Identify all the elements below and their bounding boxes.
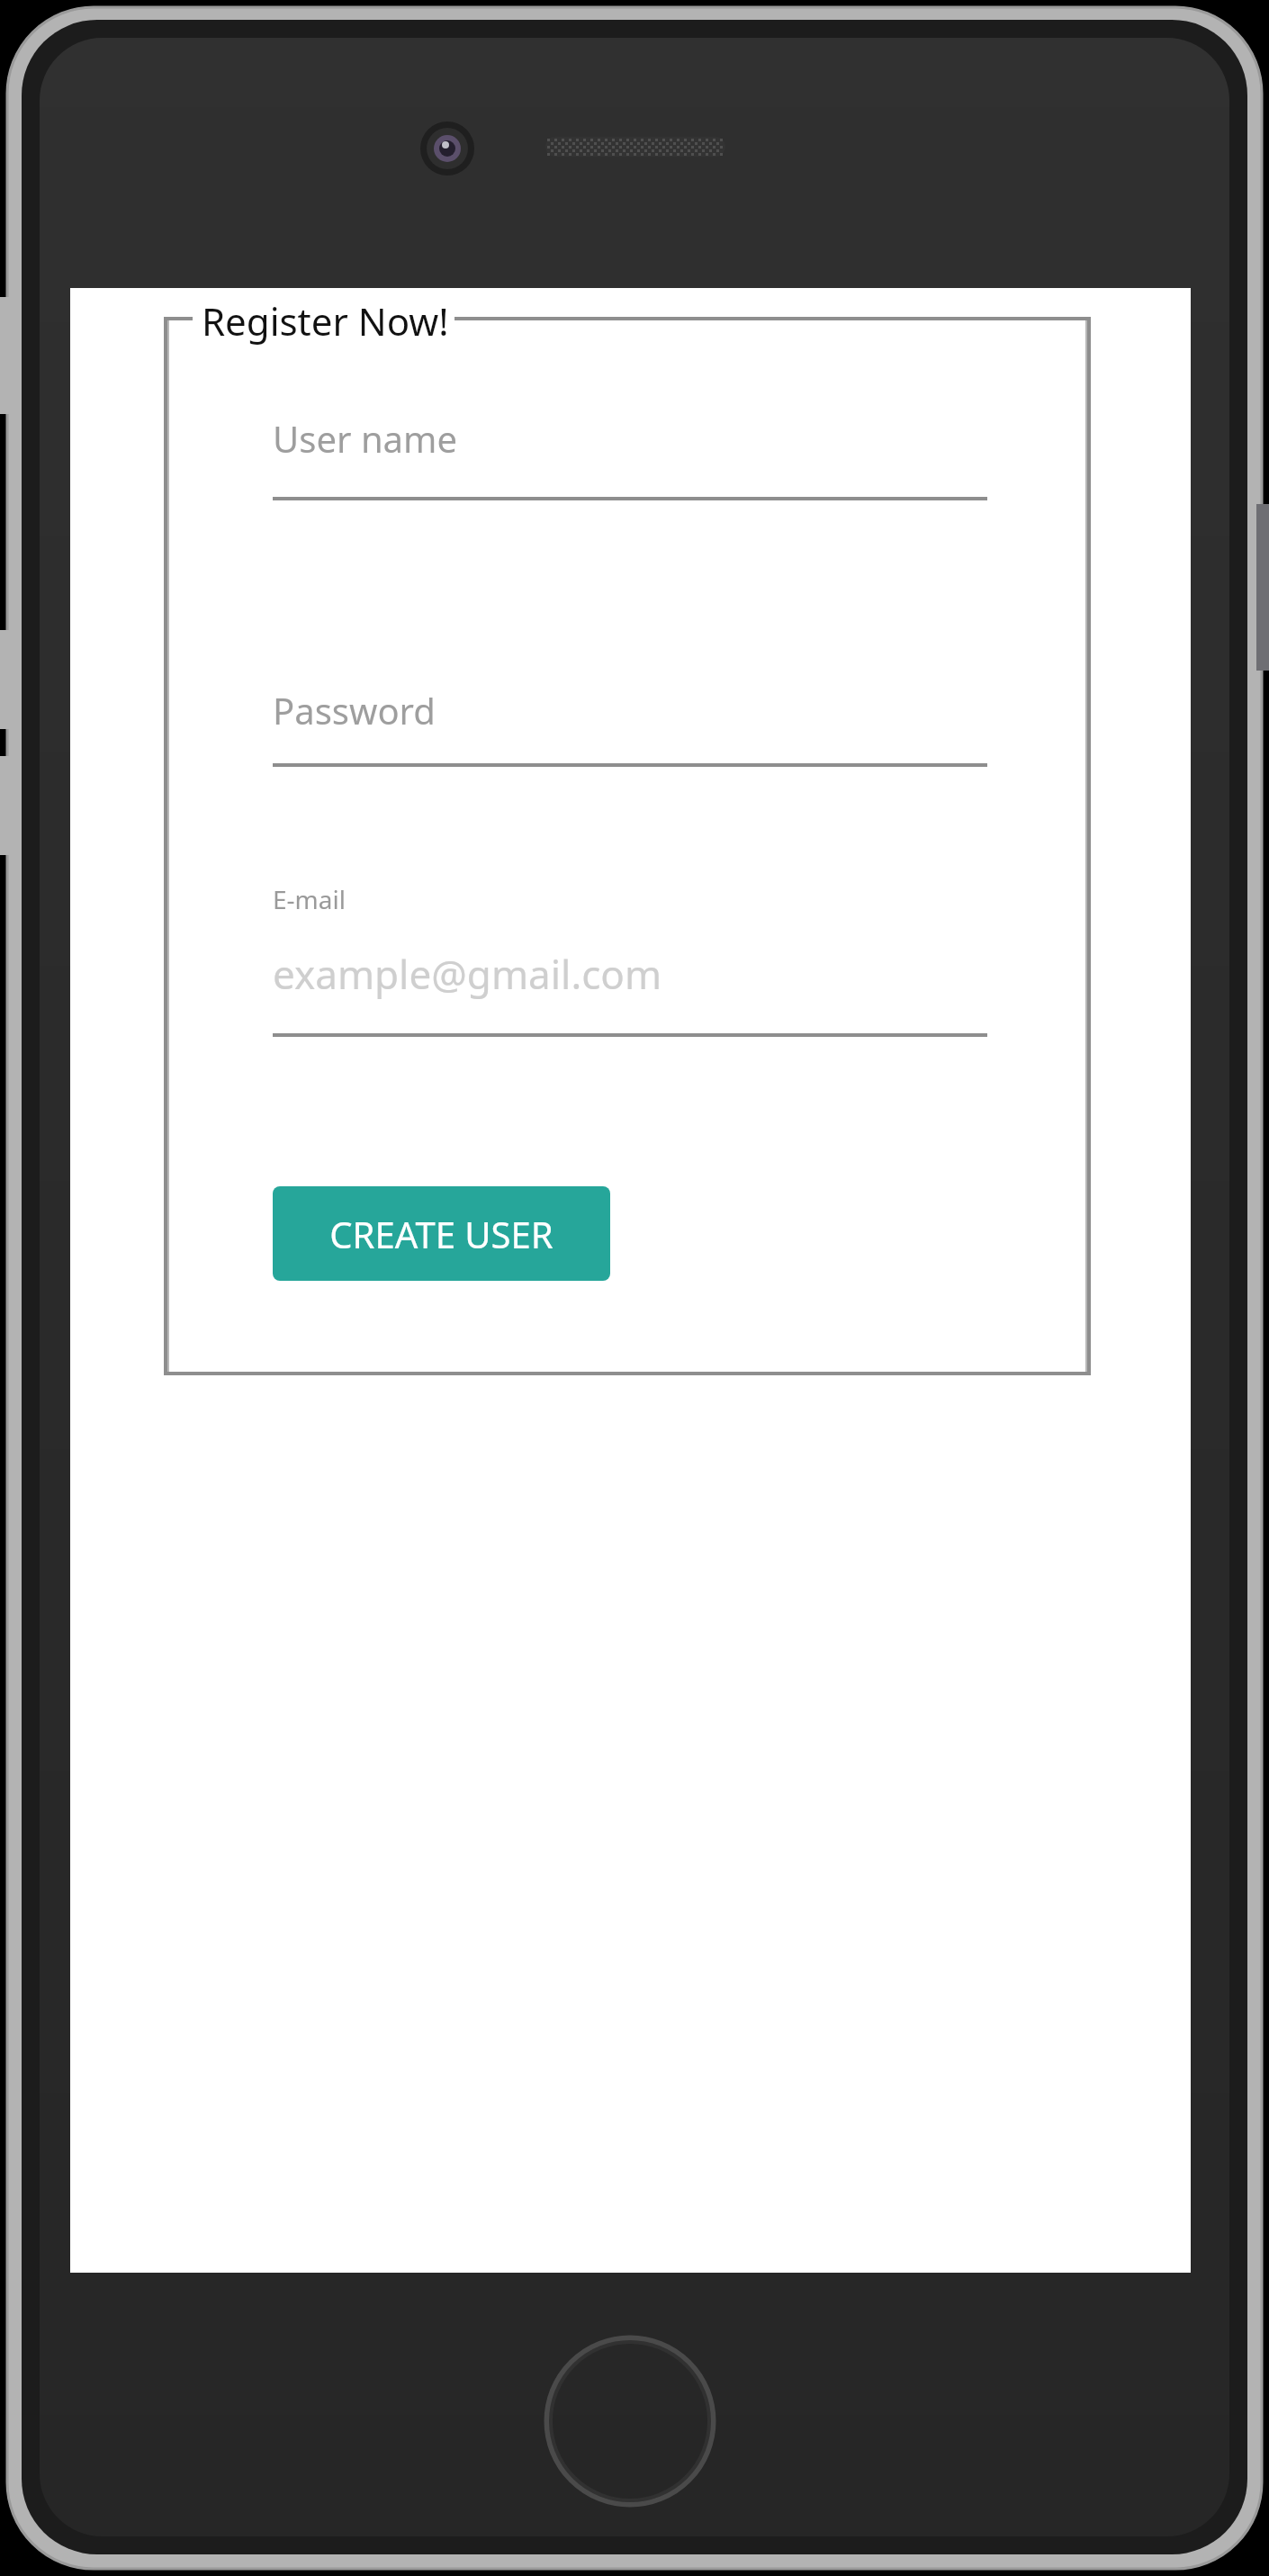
button[interactable]: User name	[273, 414, 987, 504]
button[interactable]: Password	[273, 686, 987, 770]
staticText: User name	[273, 414, 457, 463]
button[interactable]: E-mail	[273, 882, 987, 1040]
button[interactable]: CREATE USER	[273, 1186, 610, 1281]
staticText: Register Now!	[202, 295, 449, 347]
staticText: Password	[273, 686, 436, 734]
staticText: E-mail	[273, 882, 346, 916]
staticText: CREATE USER	[329, 1210, 553, 1258]
staticText: example@gmail.com	[273, 947, 662, 1001]
